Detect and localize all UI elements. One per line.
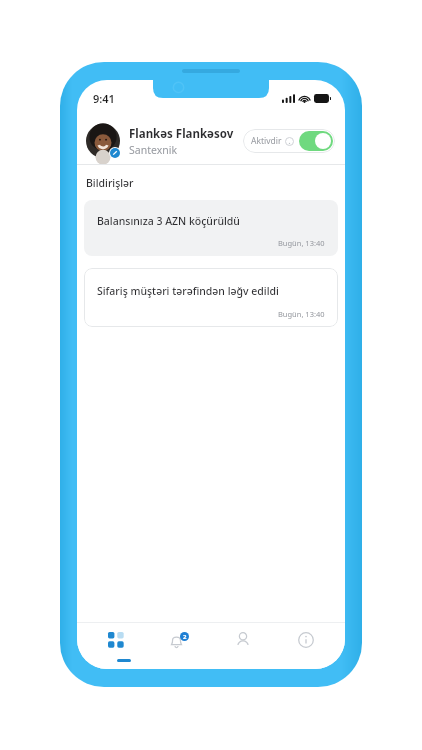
- staticText: Bildirişlər: [86, 176, 134, 190]
- button[interactable]: Notifications: [155, 632, 203, 662]
- staticText: Aktivdir: [251, 135, 282, 147]
- staticText: 9:41: [93, 91, 115, 106]
- staticText: Flankəs Flankəsov: [129, 126, 234, 142]
- staticText: Bugün, 13:40: [278, 238, 325, 248]
- staticText: Balansınıza 3 AZN köçürüldü: [97, 214, 240, 228]
- button[interactable]: Profile: [219, 632, 267, 662]
- staticText: Bugün, 13:40: [278, 309, 325, 319]
- button[interactable]: Balansınıza 3 AZN köçürüldü: [84, 200, 338, 256]
- button[interactable]: Flankəs Flankəsov: [86, 124, 335, 158]
- button[interactable]: Info: [282, 632, 330, 662]
- staticText: Sifariş müştəri tərəfindən ləğv edildi: [97, 284, 279, 298]
- staticText: 2: [183, 633, 187, 641]
- button[interactable]: Home: [92, 632, 140, 662]
- button[interactable]: Aktivdir: [243, 129, 335, 153]
- staticText: Santexnik: [129, 143, 178, 157]
- button[interactable]: Sifariş müştəri tərəfindən ləğv edildi: [84, 268, 338, 327]
